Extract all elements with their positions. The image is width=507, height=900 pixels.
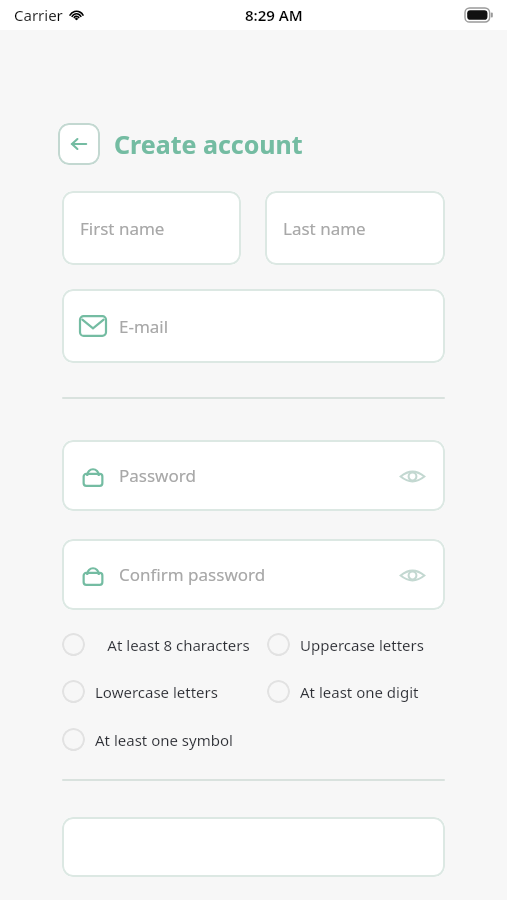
- staticText: At least 8 characters: [95, 635, 262, 655]
- button[interactable]: [62, 817, 445, 877]
- button[interactable]: First name: [62, 191, 241, 265]
- staticText: Carrier: [14, 5, 63, 25]
- button[interactable]: Back: [58, 123, 100, 165]
- button[interactable]: At least one digit: [267, 680, 419, 703]
- staticText: Password: [119, 464, 196, 487]
- staticText: E-mail: [119, 315, 169, 338]
- staticText: Create account: [114, 127, 303, 161]
- button[interactable]: Show password: [397, 461, 427, 491]
- staticText: Confirm password: [119, 563, 266, 586]
- button[interactable]: Lowercase letters: [62, 680, 267, 703]
- button[interactable]: E-mail: [62, 289, 445, 363]
- staticText: Last name: [283, 217, 366, 240]
- button[interactable]: At least one symbol: [62, 728, 233, 751]
- staticText: First name: [80, 217, 165, 240]
- button[interactable]: Last name: [265, 191, 445, 265]
- button[interactable]: Show password: [397, 560, 427, 590]
- button[interactable]: Uppercase letters: [267, 633, 424, 656]
- staticText: At least one symbol: [95, 730, 233, 750]
- button[interactable]: Password: [62, 440, 445, 511]
- staticText: Uppercase letters: [300, 635, 424, 655]
- button[interactable]: Confirm password: [62, 539, 445, 610]
- button[interactable]: At least 8 characters: [62, 633, 262, 656]
- staticText: At least one digit: [300, 682, 419, 702]
- staticText: Lowercase letters: [95, 682, 218, 702]
- staticText: 8:29 AM: [245, 5, 303, 25]
